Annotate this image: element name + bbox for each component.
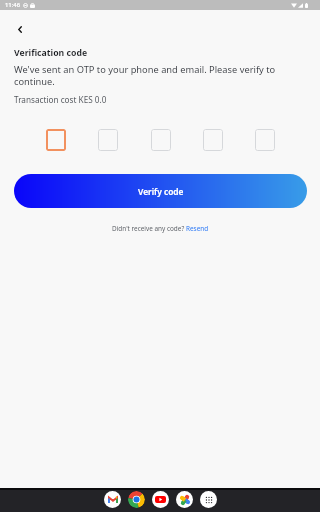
staticText: Resend: [186, 224, 209, 233]
staticText: 11:46: [5, 1, 21, 9]
staticText: We've sent an OTP to your phone and emai…: [14, 63, 296, 88]
button[interactable]: YouTube: [152, 491, 169, 508]
button[interactable]: OTP digit 4: [203, 129, 223, 151]
button[interactable]: Photos: [176, 491, 193, 508]
button[interactable]: Resend: [186, 224, 209, 233]
staticText: Verification code: [14, 47, 88, 59]
staticText: Transaction cost KES 0.0: [14, 94, 107, 105]
button[interactable]: Verify code: [14, 174, 307, 208]
button[interactable]: Back: [8, 17, 32, 41]
button[interactable]: Chrome: [128, 491, 145, 508]
staticText: Verify code: [138, 186, 184, 197]
button[interactable]: OTP digit 1: [46, 129, 66, 151]
staticText: Didn't receive any code?: [112, 224, 186, 233]
button[interactable]: OTP digit 2: [98, 129, 118, 151]
button[interactable]: Gmail: [104, 491, 121, 508]
button[interactable]: OTP digit 3: [151, 129, 171, 151]
button[interactable]: All apps: [200, 491, 217, 508]
button[interactable]: OTP digit 5: [255, 129, 275, 151]
